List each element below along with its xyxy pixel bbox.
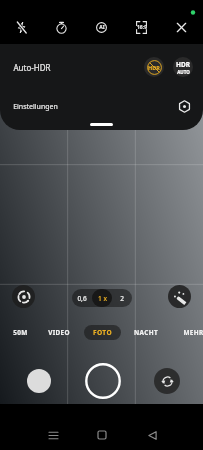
button[interactable]: HDR off — [144, 57, 164, 77]
button[interactable]: Timer — [43, 12, 79, 42]
button[interactable]: 1 x — [92, 289, 112, 307]
staticText: Auto-HDR — [13, 62, 51, 73]
staticText: FOTO — [93, 328, 112, 337]
button[interactable]: Scene optimiser — [12, 285, 35, 308]
button[interactable]: 2 — [112, 289, 132, 307]
staticText: 2 — [120, 294, 124, 303]
staticText: HDR — [148, 64, 160, 71]
staticText: HDR — [176, 60, 190, 69]
button[interactable]: Gallery — [27, 369, 51, 393]
button[interactable]: 0,6 — [72, 289, 92, 307]
other: Settings — [178, 100, 191, 113]
staticText: AUTO — [177, 69, 190, 75]
button[interactable]: Flash off — [3, 12, 39, 42]
button[interactable]: Aspect ratio 16:9 — [123, 12, 159, 42]
button[interactable]: Einstellungen — [0, 90, 203, 123]
button[interactable]: Take photo — [85, 363, 121, 399]
button[interactable]: Close — [163, 12, 199, 42]
staticText: 50M — [13, 328, 28, 337]
button[interactable]: AI — [83, 12, 119, 42]
button[interactable]: HDR auto — [173, 57, 193, 77]
button[interactable]: NACHT — [126, 322, 166, 342]
staticText: 1 x — [98, 294, 107, 303]
button[interactable]: 50M — [0, 322, 40, 342]
staticText: NACHT — [134, 328, 158, 337]
staticText: MEHR — [183, 328, 203, 337]
staticText: 0,6 — [77, 294, 87, 303]
button[interactable]: FOTO — [82, 322, 122, 342]
button[interactable]: MEHR — [173, 322, 203, 342]
staticText: AI — [99, 24, 105, 31]
staticText: VIDEO — [48, 328, 70, 337]
button[interactable]: Back — [136, 419, 168, 450]
button[interactable]: Recents — [37, 419, 69, 450]
button[interactable]: Switch camera — [154, 368, 180, 394]
button[interactable]: Home — [86, 419, 118, 450]
staticText: 16:9 — [137, 24, 147, 31]
button[interactable]: Auto-HDR — [0, 44, 203, 90]
staticText: Einstellungen — [13, 102, 58, 112]
button[interactable]: VIDEO — [39, 322, 79, 342]
button[interactable]: Filters — [168, 285, 191, 308]
